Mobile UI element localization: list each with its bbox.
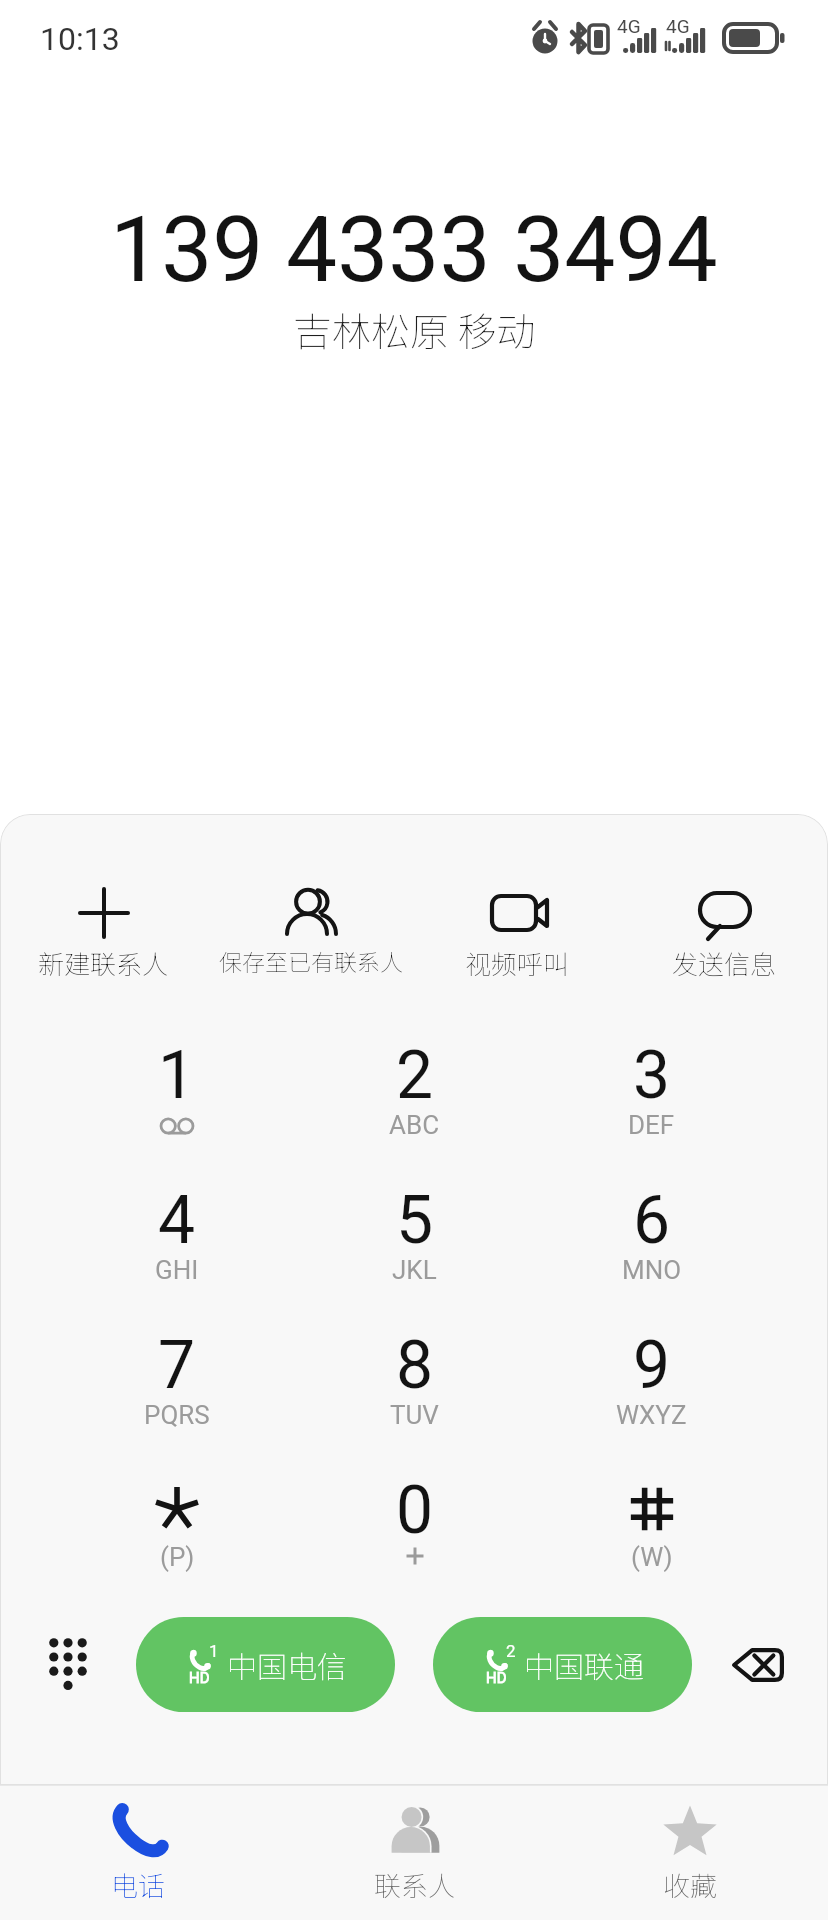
button[interactable]: 1: [58, 1018, 296, 1163]
button[interactable]: 发送信息: [621, 885, 828, 982]
staticText: TUV: [390, 1400, 439, 1430]
staticText: MNO: [622, 1255, 682, 1285]
staticText: HD: [486, 1669, 507, 1687]
staticText: 10:13: [40, 20, 120, 58]
staticText: JKL: [392, 1255, 437, 1285]
button[interactable]: 2: [433, 1617, 692, 1712]
button[interactable]: 1: [136, 1617, 395, 1712]
staticText: 8: [396, 1327, 434, 1404]
staticText: 吉林松原 移动: [293, 301, 536, 357]
button[interactable]: 7: [58, 1308, 296, 1453]
staticText: 电话: [111, 1865, 165, 1904]
button[interactable]: 收藏: [552, 1786, 828, 1920]
button[interactable]: Keypad: [0, 1604, 136, 1724]
button[interactable]: 新建联系人: [0, 885, 207, 982]
staticText: 0: [396, 1472, 434, 1549]
button[interactable]: 电话: [0, 1786, 276, 1920]
button[interactable]: 视频呼叫: [414, 885, 621, 982]
button[interactable]: Delete: [692, 1604, 828, 1724]
staticText: 6: [633, 1182, 671, 1259]
button[interactable]: 6: [533, 1163, 770, 1308]
staticText: (P): [160, 1542, 195, 1572]
button[interactable]: 4: [58, 1163, 296, 1308]
staticText: 1: [209, 1641, 219, 1661]
button[interactable]: 保存至已有联系人: [207, 885, 414, 977]
staticText: 保存至已有联系人: [219, 944, 403, 977]
button[interactable]: 9: [533, 1308, 770, 1453]
button[interactable]: 8: [296, 1308, 533, 1453]
staticText: 4: [158, 1182, 196, 1259]
staticText: 5: [396, 1182, 434, 1259]
staticText: 7: [158, 1327, 196, 1404]
staticText: 139 4333 3494: [110, 197, 718, 304]
staticText: 3: [633, 1037, 671, 1114]
staticText: 1: [158, 1037, 196, 1114]
staticText: GHI: [155, 1255, 199, 1285]
button[interactable]: (W): [533, 1453, 770, 1598]
staticText: DEF: [628, 1110, 675, 1140]
staticText: 9: [633, 1327, 671, 1404]
button[interactable]: (P): [58, 1453, 296, 1598]
button[interactable]: 联系人: [276, 1786, 552, 1920]
staticText: WXYZ: [616, 1400, 687, 1430]
button[interactable]: 3: [533, 1018, 770, 1163]
button[interactable]: 2: [296, 1018, 533, 1163]
staticText: 发送信息: [672, 944, 777, 982]
staticText: (W): [631, 1542, 673, 1572]
staticText: 4G: [666, 15, 690, 37]
staticText: 联系人: [374, 1865, 455, 1904]
staticText: HD: [189, 1669, 210, 1687]
staticText: 视频呼叫: [465, 944, 570, 982]
button[interactable]: 5: [296, 1163, 533, 1308]
staticText: PQRS: [144, 1400, 210, 1430]
staticText: 中国联通: [524, 1643, 644, 1686]
staticText: 2: [396, 1037, 434, 1114]
button[interactable]: 0: [296, 1453, 533, 1598]
staticText: ABC: [389, 1110, 440, 1140]
staticText: 收藏: [663, 1865, 717, 1904]
staticText: 2: [506, 1641, 516, 1661]
staticText: 新建联系人: [38, 944, 169, 982]
staticText: 4G: [617, 15, 641, 37]
staticText: 中国电信: [227, 1643, 347, 1686]
